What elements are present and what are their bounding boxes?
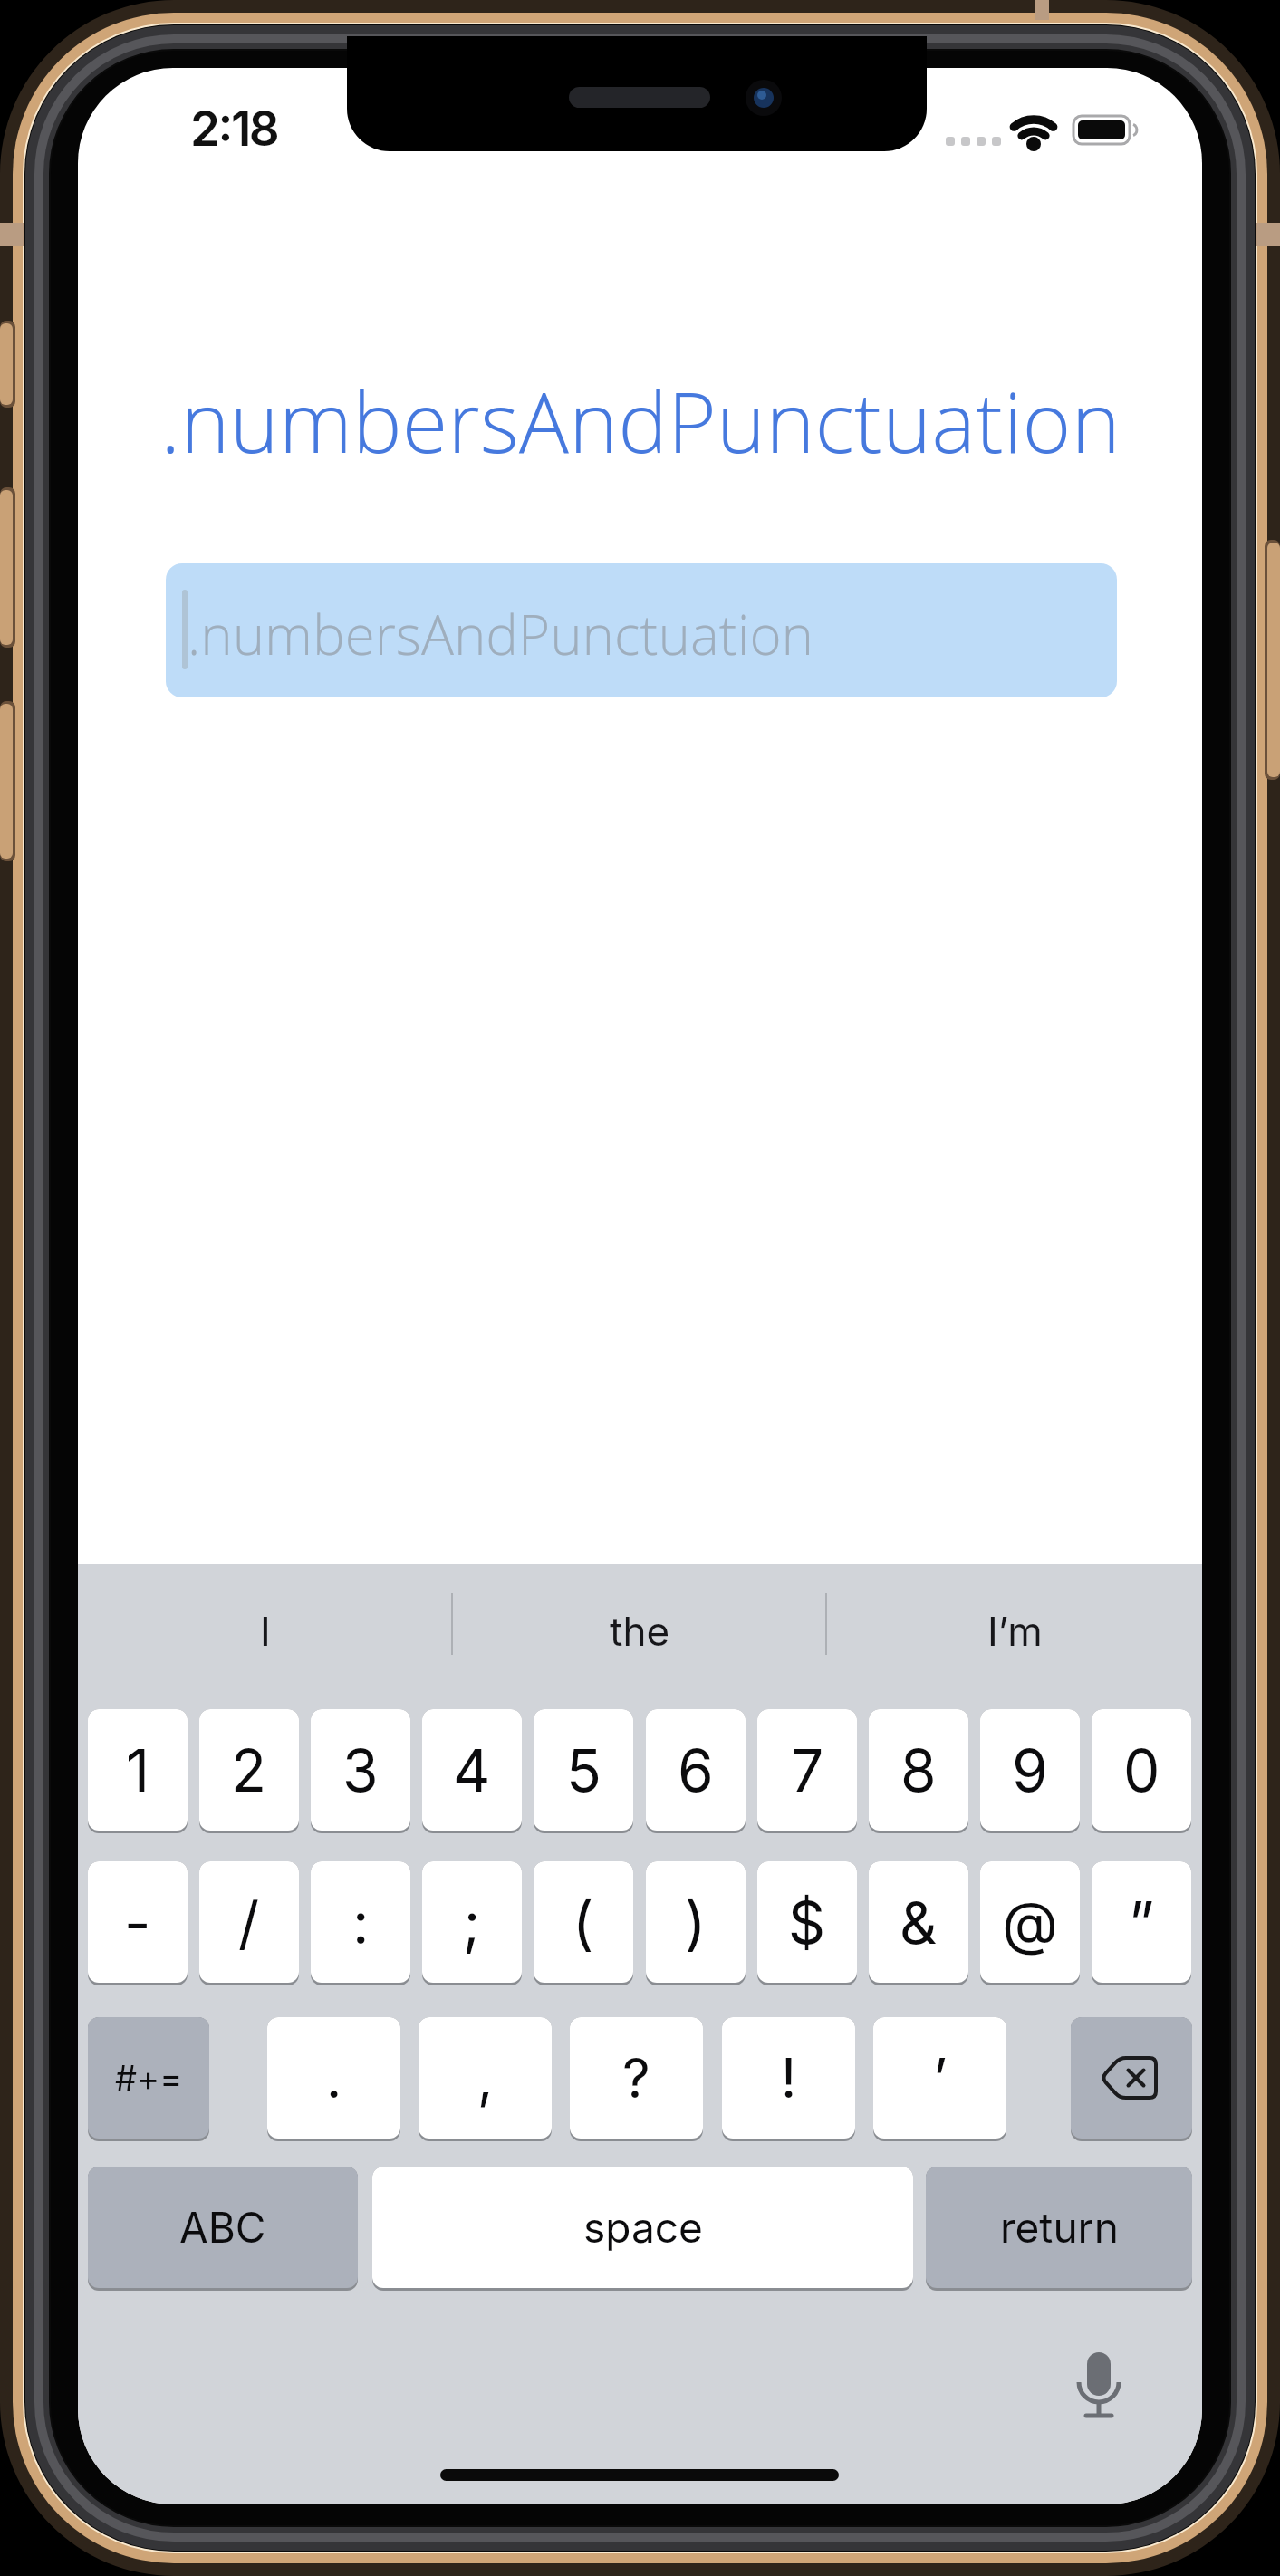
button[interactable]: ” xyxy=(1092,1861,1191,1983)
button[interactable]: 7 xyxy=(757,1709,857,1831)
staticText: ABC xyxy=(179,2202,266,2253)
button[interactable]: 4 xyxy=(422,1709,522,1831)
button[interactable]: 8 xyxy=(869,1709,968,1831)
button[interactable]: ABC xyxy=(88,2167,358,2288)
button[interactable]: @ xyxy=(980,1861,1080,1983)
staticText: ! xyxy=(781,2045,797,2111)
button[interactable]: the xyxy=(610,1607,670,1655)
staticText: / xyxy=(238,1888,260,1957)
staticText: $ xyxy=(788,1888,826,1957)
button[interactable]: 3 xyxy=(311,1709,410,1831)
button[interactable]: 2 xyxy=(199,1709,299,1831)
button[interactable] xyxy=(1071,2017,1192,2139)
staticText: . xyxy=(326,2045,342,2111)
staticText: 1 xyxy=(126,1735,150,1805)
staticText: return xyxy=(1000,2202,1119,2253)
staticText: ’ xyxy=(933,2045,948,2111)
staticText: @ xyxy=(1002,1888,1058,1957)
button[interactable]: space xyxy=(372,2167,913,2288)
staticText: ; xyxy=(463,1888,481,1957)
staticText: 6 xyxy=(678,1735,714,1805)
button[interactable]: $ xyxy=(757,1861,857,1983)
button[interactable]: 5 xyxy=(534,1709,633,1831)
staticText: 8 xyxy=(900,1735,937,1805)
staticText: #+= xyxy=(115,2057,183,2099)
button[interactable]: 0 xyxy=(1092,1709,1191,1831)
staticText: - xyxy=(124,1888,151,1957)
button[interactable]: ; xyxy=(422,1861,522,1983)
staticText: 5 xyxy=(566,1735,602,1805)
staticText: 2 xyxy=(231,1735,267,1805)
staticText: 3 xyxy=(342,1735,379,1805)
button[interactable]: - xyxy=(88,1861,188,1983)
button[interactable]: ’ xyxy=(873,2017,1006,2139)
button[interactable]: ) xyxy=(646,1861,746,1983)
staticText: 4 xyxy=(453,1735,491,1805)
button[interactable]: I’m xyxy=(987,1607,1043,1655)
staticText: ” xyxy=(1129,1888,1155,1957)
button[interactable]: ( xyxy=(534,1861,633,1983)
staticText: , xyxy=(477,2045,494,2111)
button[interactable]: & xyxy=(869,1861,968,1983)
button[interactable]: ? xyxy=(570,2017,703,2139)
staticText: & xyxy=(900,1888,938,1957)
staticText: ? xyxy=(622,2045,650,2111)
staticText: 9 xyxy=(1012,1735,1048,1805)
button[interactable]: : xyxy=(311,1861,410,1983)
staticText: space xyxy=(583,2202,703,2253)
staticText: 7 xyxy=(791,1735,824,1805)
staticText: .numbersAndPunctuation xyxy=(160,364,1121,477)
staticText: : xyxy=(352,1888,370,1957)
button[interactable]: 1 xyxy=(88,1709,188,1831)
staticText: ( xyxy=(573,1888,594,1957)
button[interactable]: return xyxy=(926,2167,1192,2288)
staticText: ) xyxy=(685,1888,707,1957)
staticText: 0 xyxy=(1123,1735,1160,1805)
button[interactable]: #+= xyxy=(88,2017,209,2139)
staticText: 2:18 xyxy=(190,100,278,158)
staticText: .numbersAndPunctuation xyxy=(188,597,813,671)
button[interactable]: I xyxy=(260,1607,271,1655)
button[interactable]: ! xyxy=(722,2017,855,2139)
button[interactable]: 6 xyxy=(646,1709,746,1831)
button[interactable]: .numbersAndPunctuation xyxy=(166,563,1117,697)
button[interactable]: 9 xyxy=(980,1709,1080,1831)
button[interactable]: , xyxy=(419,2017,552,2139)
button[interactable]: / xyxy=(199,1861,299,1983)
button[interactable]: . xyxy=(267,2017,400,2139)
